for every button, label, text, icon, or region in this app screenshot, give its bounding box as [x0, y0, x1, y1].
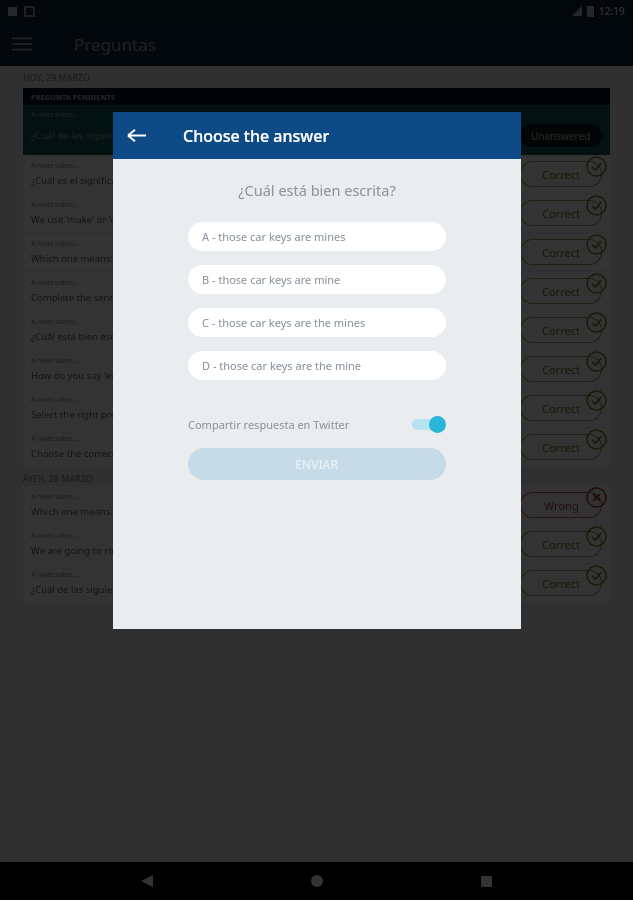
- button[interactable]: Home: [295, 862, 339, 900]
- staticText: Unanswered: [531, 129, 591, 143]
- staticText: Correct: [542, 362, 580, 377]
- staticText: Correct: [542, 401, 580, 416]
- staticText: Which one means: 'ya lo hemos hecho'?: [31, 252, 208, 265]
- staticText: We use 'make' or 'do' in this sentence?: [31, 213, 201, 226]
- staticText: Choose the correct past participle form: [31, 447, 206, 460]
- staticText: Preguntas: [74, 33, 156, 56]
- staticText: ¿Cuál de las siguientes palabras inglesa…: [31, 129, 354, 142]
- button[interactable]: Back: [113, 112, 160, 159]
- staticText: D - those car keys are the mine: [202, 358, 362, 373]
- button[interactable]: A - those car keys are mines: [188, 222, 446, 251]
- button[interactable]: B - those car keys are mine: [188, 265, 446, 294]
- staticText: ¿Cuál es el significado de la palabra?: [31, 174, 193, 187]
- staticText: A nivel sobre...: [31, 356, 79, 366]
- button[interactable]: Back: [125, 862, 169, 900]
- staticText: AYER, 28 MARZO: [23, 472, 93, 484]
- staticText: ¿Cuál está bien escrita en inglés?: [31, 330, 177, 343]
- staticText: A nivel sobre...: [31, 434, 79, 444]
- staticText: A nivel sobre...: [31, 110, 79, 120]
- staticText: HOY, 29 MARZO: [23, 71, 91, 83]
- staticText: Correct: [542, 440, 580, 455]
- staticText: A nivel sobre...: [31, 200, 79, 210]
- button[interactable]: Compartir respuesta en Twitter: [188, 410, 446, 438]
- staticText: We are going to roll out the red carpet …: [31, 544, 320, 557]
- staticText: ¿Cuál de las siguientes 'phrasal verbs' …: [31, 583, 336, 596]
- staticText: PREGUNTA PENDIENTE: [31, 92, 116, 102]
- button[interactable]: Open navigation menu: [0, 22, 44, 66]
- staticText: A nivel sobre...: [31, 395, 79, 405]
- staticText: Which one means: 'deberían de haberlo pa…: [31, 505, 249, 518]
- staticText: Correct: [542, 323, 580, 338]
- staticText: A nivel sobre...: [31, 492, 79, 502]
- staticText: ENVIAR: [295, 456, 339, 472]
- staticText: Correct: [542, 206, 580, 221]
- staticText: A nivel sobre...: [31, 317, 79, 327]
- button[interactable]: C - those car keys are the mines: [188, 308, 446, 337]
- button[interactable]: D - those car keys are the mine: [188, 351, 446, 380]
- staticText: How do you say 'estar de acuerdo'?: [31, 369, 187, 382]
- staticText: A nivel sobre...: [31, 531, 79, 541]
- staticText: Complete the sentence with a correct ver…: [31, 291, 220, 304]
- staticText: Correct: [542, 167, 580, 182]
- staticText: Correct: [542, 537, 580, 552]
- staticText: Select the right preposition for it: [31, 408, 176, 421]
- staticText: A nivel sobre...: [31, 278, 79, 288]
- staticText: A nivel sobre...: [31, 239, 79, 249]
- staticText: A nivel sobre...: [31, 570, 79, 580]
- staticText: 12:19: [599, 4, 625, 18]
- staticText: ¿Cuál está bien escrita?: [238, 180, 396, 200]
- staticText: Correct: [542, 245, 580, 260]
- staticText: A nivel sobre...: [31, 161, 79, 171]
- staticText: B - those car keys are mine: [202, 272, 341, 287]
- staticText: Correct: [542, 576, 580, 591]
- button[interactable]: ENVIAR: [188, 448, 446, 480]
- button[interactable]: Recent apps: [464, 862, 508, 900]
- staticText: Correct: [542, 284, 580, 299]
- staticText: Wrong: [544, 498, 579, 513]
- staticText: C - those car keys are the mines: [202, 315, 366, 330]
- staticText: Choose the answer: [183, 125, 330, 147]
- staticText: Compartir respuesta en Twitter: [188, 417, 350, 432]
- staticText: A - those car keys are mines: [202, 229, 346, 244]
